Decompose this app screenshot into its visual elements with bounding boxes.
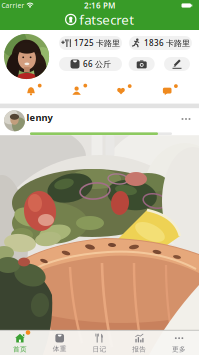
staticText: 66 公斤 (83, 59, 111, 69)
staticText: 1725 卡路里 (74, 38, 120, 48)
button[interactable]: 查看动态 (0, 135, 199, 355)
staticText: 1836 卡路里 (144, 38, 190, 48)
button[interactable]: 首页 (0, 330, 40, 355)
button[interactable]: 拍照 (129, 57, 155, 71)
button[interactable]: 编辑 (164, 57, 190, 71)
button[interactable]: 支持 (113, 83, 129, 99)
button[interactable]: lenny (0, 108, 64, 135)
staticText: 体重 (53, 345, 67, 353)
staticText: 报告 (132, 345, 146, 353)
button[interactable]: 更多 (159, 330, 199, 355)
button[interactable]: 报告 (119, 330, 159, 355)
staticText: 日记 (92, 345, 106, 353)
button[interactable]: 66 公斤 (59, 57, 122, 71)
staticText: 更多 (172, 345, 186, 353)
button[interactable]: 更多选项 (178, 114, 193, 123)
button[interactable]: 体重 (40, 330, 80, 355)
button[interactable]: 1836 卡路里 (129, 36, 192, 50)
staticText: 2:16 PM (84, 0, 115, 11)
staticText: fatsecret (79, 11, 134, 28)
button[interactable]: 好友 (69, 83, 85, 99)
button[interactable]: 消息 (159, 83, 175, 99)
staticText: lenny (26, 111, 52, 124)
button[interactable]: 通知 (23, 83, 39, 99)
button[interactable]: 日记 (80, 330, 119, 355)
staticText: Carrier (1, 1, 24, 10)
staticText: 首页 (13, 345, 27, 353)
button[interactable]: 1725 卡路里 (59, 36, 122, 50)
